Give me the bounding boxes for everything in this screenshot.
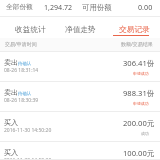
staticText: 净值走势: [65, 25, 96, 35]
staticText: 待确认: [18, 91, 32, 97]
button[interactable]: 卖出: [0, 82, 160, 112]
staticText: 交易/申请时间: [5, 41, 37, 48]
staticText: 待确认: [18, 61, 32, 67]
staticText: 交易记录: [119, 25, 150, 35]
staticText: 306.41份: [123, 58, 155, 68]
staticText: 2016-11-30 14:50:20: [4, 157, 52, 160]
staticText: 全部份额: [6, 3, 33, 11]
staticText: 成功: [141, 131, 149, 136]
staticText: 1,294.72: [44, 2, 73, 12]
staticText: 买入: [4, 148, 19, 157]
staticText: 可用份额: [82, 3, 112, 12]
staticText: 申请成功: [133, 101, 149, 106]
staticText: 数额/交易结果: [121, 41, 153, 48]
staticText: 200.00元: [123, 118, 155, 128]
button[interactable]: 卖出: [0, 52, 160, 82]
staticText: 卖出: [4, 88, 19, 97]
button[interactable]: 收益统计: [0, 17, 55, 38]
button[interactable]: 净值走势: [55, 17, 107, 38]
staticText: 收益统计: [15, 25, 46, 35]
staticText: 2016-11-30 14:50:20: [4, 127, 52, 134]
staticText: 100.00元: [123, 148, 155, 158]
staticText: 988.31份: [123, 88, 155, 98]
button[interactable]: 买入: [0, 112, 160, 142]
staticText: 卖出: [4, 58, 19, 67]
staticText: 申请成功: [133, 71, 149, 76]
button[interactable]: 买入: [0, 142, 160, 160]
button[interactable]: 交易记录: [107, 17, 160, 38]
staticText: 买入: [4, 118, 19, 127]
staticText: 08-26 18:30:39: [4, 97, 39, 104]
staticText: 0.00: [138, 2, 153, 12]
staticText: 08-26 18:31:14: [4, 67, 39, 74]
